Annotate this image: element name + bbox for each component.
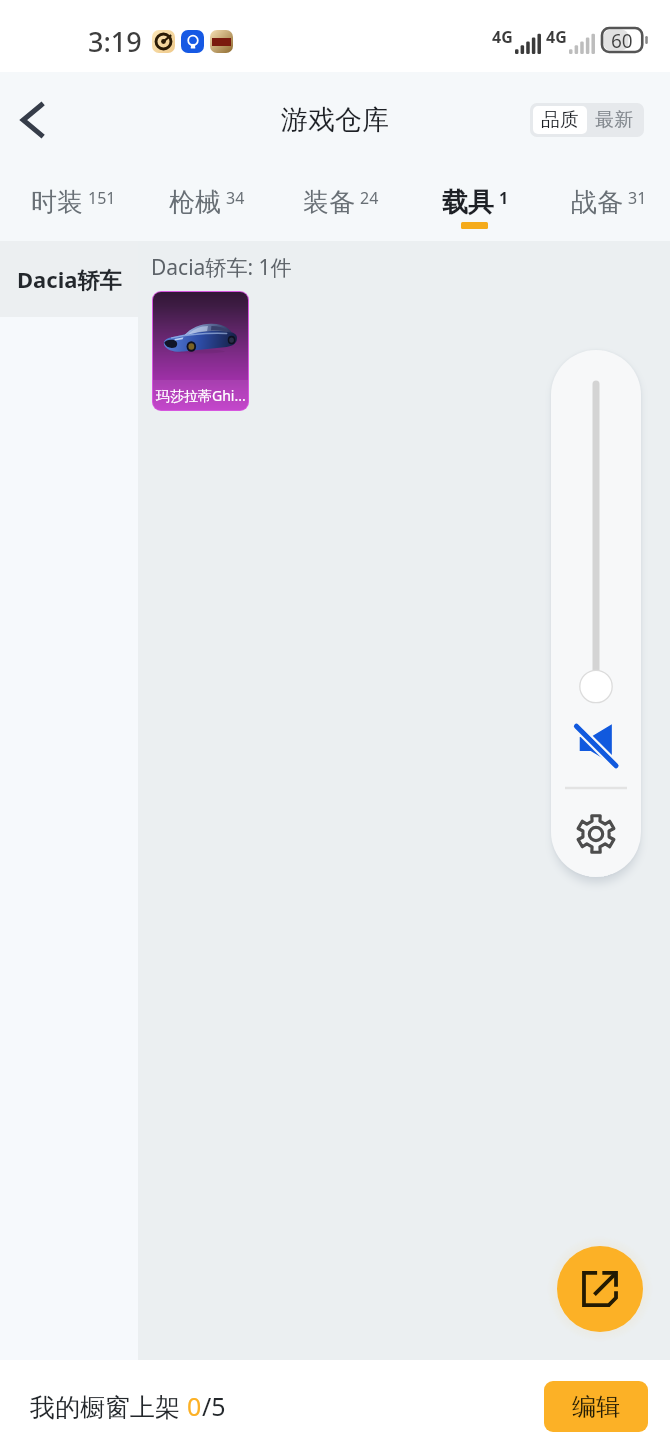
staticText: /5 [202, 1389, 226, 1423]
staticText: 0 [187, 1389, 202, 1423]
staticText: 我的橱窗上架 [30, 1389, 187, 1423]
staticText: 1 [499, 187, 509, 209]
staticText: 151 [88, 187, 116, 209]
staticText: 装备 [303, 186, 355, 219]
staticText: 载具 [442, 186, 494, 219]
button[interactable]: 战备 [536, 168, 670, 241]
button[interactable]: 最新 [587, 106, 641, 134]
button[interactable]: 编辑 [544, 1381, 648, 1432]
staticText: 31 [628, 187, 647, 209]
staticText: Dacia轿车 [17, 264, 122, 294]
staticText: 游戏仓库 [281, 103, 389, 137]
button[interactable]: Dacia轿车 [0, 241, 138, 317]
button[interactable]: Back [4, 92, 60, 148]
staticText: 3:19 [88, 23, 142, 60]
button[interactable]: Mute [568, 716, 624, 772]
staticText: 4G [492, 26, 513, 48]
button[interactable]: 枪械 [134, 168, 268, 241]
staticText: 玛莎拉蒂Ghi... [156, 386, 246, 405]
button[interactable]: 装备 [268, 168, 402, 241]
button[interactable]: 品质 [533, 106, 587, 134]
staticText: 4G [546, 26, 567, 48]
staticText: 品质 [541, 108, 579, 132]
staticText: 34 [226, 187, 245, 209]
staticText: 时装 [31, 186, 83, 219]
button[interactable]: Settings [568, 806, 624, 862]
staticText: 24 [360, 187, 379, 209]
staticText: 60 [611, 28, 633, 52]
staticText: 最新 [595, 108, 633, 132]
staticText: 编辑 [572, 1392, 620, 1422]
staticText: 战备 [571, 186, 623, 219]
button[interactable]: 时装 [0, 168, 134, 241]
staticText: 枪械 [169, 186, 221, 219]
staticText: Dacia轿车: 1件 [151, 253, 292, 282]
button[interactable]: Share [557, 1246, 643, 1332]
button[interactable]: 玛莎拉蒂Ghi... [153, 292, 248, 410]
button[interactable]: 载具 [402, 168, 536, 241]
